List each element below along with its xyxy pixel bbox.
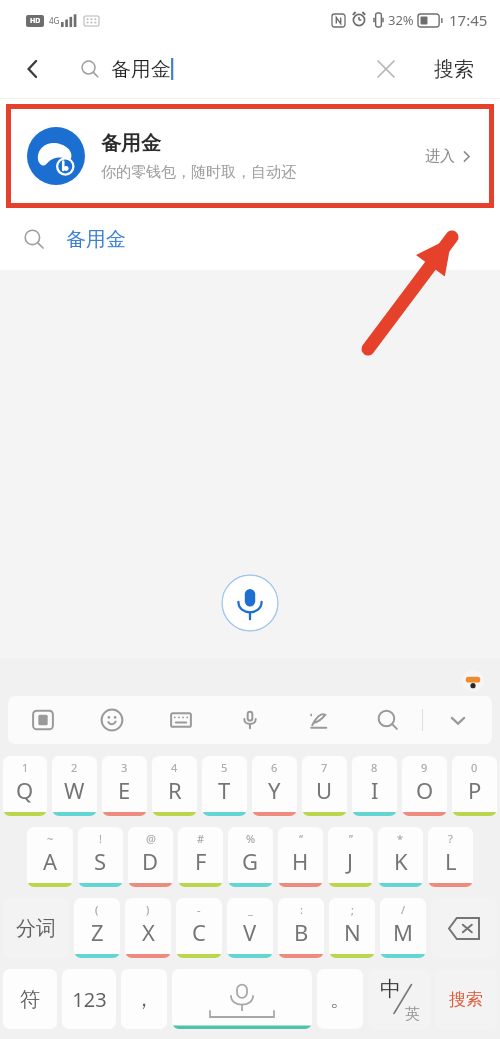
staticText: ? bbox=[448, 831, 453, 846]
button[interactable]: ? bbox=[428, 827, 473, 887]
staticText: 5 bbox=[221, 760, 228, 775]
button[interactable]: 分词 bbox=[3, 898, 69, 958]
staticText: 0 bbox=[471, 760, 478, 775]
staticText: 2 bbox=[71, 760, 78, 775]
button[interactable]: Search bbox=[353, 696, 422, 744]
staticText: J bbox=[347, 846, 354, 876]
staticText: / bbox=[401, 902, 406, 917]
button[interactable]: ( bbox=[74, 898, 120, 958]
button[interactable]: ~ bbox=[27, 827, 73, 887]
staticText: C bbox=[192, 917, 206, 947]
button[interactable]: “ bbox=[278, 827, 323, 887]
button[interactable]: 。 bbox=[317, 969, 363, 1029]
staticText: ! bbox=[99, 831, 102, 846]
staticText: O bbox=[416, 775, 434, 805]
staticText: K bbox=[394, 846, 408, 876]
staticText: 9 bbox=[421, 760, 428, 775]
button[interactable]: Emoji bbox=[77, 696, 146, 744]
button[interactable]: Hide keyboard bbox=[423, 696, 492, 744]
button[interactable]: ， bbox=[121, 969, 167, 1029]
button[interactable]: Handwriting bbox=[284, 696, 353, 744]
staticText: Q bbox=[16, 775, 34, 805]
staticText: V bbox=[243, 917, 257, 947]
staticText: _ bbox=[248, 902, 253, 917]
button[interactable]: ” bbox=[328, 827, 373, 887]
staticText: M bbox=[393, 917, 413, 947]
staticText: : bbox=[300, 902, 303, 917]
staticText: R bbox=[168, 775, 182, 805]
button[interactable]: % bbox=[228, 827, 273, 887]
button[interactable]: 123 bbox=[62, 969, 116, 1029]
staticText: 英 bbox=[405, 1005, 420, 1024]
staticText: X bbox=[142, 917, 155, 947]
button[interactable]: Back bbox=[0, 40, 65, 98]
staticText: HD bbox=[30, 16, 41, 26]
staticText: @ bbox=[146, 831, 156, 846]
button[interactable]: ) bbox=[125, 898, 171, 958]
staticText: S bbox=[94, 846, 107, 876]
button[interactable]: @ bbox=[128, 827, 173, 887]
staticText: P bbox=[468, 775, 482, 805]
staticText: A bbox=[43, 846, 58, 876]
staticText: D bbox=[142, 846, 159, 876]
staticText: ” bbox=[349, 831, 353, 846]
button[interactable]: 3 bbox=[102, 756, 147, 816]
button[interactable]: Keyboard layout bbox=[146, 696, 215, 744]
staticText: 4G bbox=[49, 15, 60, 26]
staticText: 中 bbox=[380, 976, 401, 1002]
button[interactable]: - bbox=[176, 898, 222, 958]
staticText: U bbox=[316, 775, 333, 805]
staticText: ( bbox=[95, 902, 99, 917]
staticText: ; bbox=[351, 902, 354, 917]
staticText: F bbox=[195, 846, 207, 876]
staticText: 符 bbox=[20, 987, 40, 1012]
button[interactable]: _ bbox=[227, 898, 273, 958]
staticText: 4 bbox=[171, 760, 178, 775]
staticText: H bbox=[292, 846, 309, 876]
staticText: Y bbox=[268, 775, 281, 805]
button[interactable]: ! bbox=[78, 827, 123, 887]
button[interactable]: 符 bbox=[3, 969, 57, 1029]
button[interactable]: 6 bbox=[252, 756, 297, 816]
button[interactable]: Space bbox=[172, 969, 312, 1029]
staticText: 32% bbox=[388, 11, 414, 29]
button[interactable]: 备用金 bbox=[65, 48, 408, 90]
staticText: W bbox=[64, 775, 85, 805]
button[interactable]: * bbox=[378, 827, 423, 887]
button[interactable]: # bbox=[178, 827, 223, 887]
button[interactable]: 备用金 bbox=[11, 109, 489, 203]
button[interactable]: 7 bbox=[302, 756, 347, 816]
button[interactable]: Voice input bbox=[215, 696, 284, 744]
button[interactable]: : bbox=[278, 898, 324, 958]
button[interactable]: ; bbox=[329, 898, 375, 958]
button[interactable]: Clear text bbox=[364, 48, 408, 90]
button[interactable]: 中 bbox=[368, 969, 430, 1029]
staticText: T bbox=[218, 775, 231, 805]
button[interactable]: 5 bbox=[202, 756, 247, 816]
staticText: - bbox=[197, 902, 201, 917]
staticText: * bbox=[397, 831, 404, 846]
button[interactable]: Sogou input bbox=[8, 696, 77, 744]
button[interactable]: Voice search bbox=[221, 574, 279, 632]
button[interactable]: 搜索 bbox=[435, 969, 497, 1029]
staticText: 备用金 bbox=[66, 227, 126, 252]
button[interactable]: 2 bbox=[52, 756, 97, 816]
staticText: ) bbox=[146, 902, 150, 917]
button[interactable]: 8 bbox=[352, 756, 397, 816]
button[interactable]: Delete bbox=[431, 898, 497, 958]
button[interactable]: 9 bbox=[402, 756, 447, 816]
staticText: 6 bbox=[271, 760, 278, 775]
button[interactable]: 0 bbox=[452, 756, 497, 816]
button[interactable]: 备用金 bbox=[0, 208, 500, 270]
staticText: 3 bbox=[121, 760, 128, 775]
button[interactable]: / bbox=[380, 898, 426, 958]
staticText: N bbox=[344, 917, 361, 947]
staticText: 搜索 bbox=[434, 57, 474, 82]
staticText: I bbox=[371, 775, 379, 805]
button[interactable]: 4 bbox=[152, 756, 197, 816]
button[interactable]: 1 bbox=[3, 756, 47, 816]
staticText: 7 bbox=[321, 760, 328, 775]
staticText: 你的零钱包，随时取，自动还 bbox=[101, 163, 296, 182]
staticText: 。 bbox=[330, 987, 350, 1012]
button[interactable]: 搜索 bbox=[408, 40, 500, 98]
